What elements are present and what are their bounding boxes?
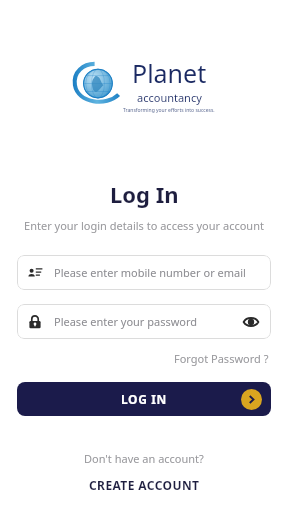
staticText: Transforming your efforts into success.: [123, 107, 215, 114]
button[interactable]: Forgot Password ?: [172, 349, 271, 368]
other: Submit: [241, 389, 262, 410]
staticText: Enter your login details to access your …: [24, 218, 264, 233]
button[interactable]: Please enter your password: [17, 304, 271, 339]
staticText: Please enter your password: [54, 314, 240, 329]
staticText: Planet: [132, 56, 207, 90]
button[interactable]: LOG IN: [17, 382, 271, 416]
staticText: Log In: [110, 179, 179, 209]
staticText: Forgot Password ?: [174, 351, 269, 366]
staticText: accountancy: [137, 90, 202, 105]
button[interactable]: Show password: [240, 311, 262, 333]
staticText: Please enter mobile number or email: [54, 265, 246, 280]
button[interactable]: CREATE ACCOUNT: [85, 475, 204, 495]
staticText: Don't have an account?: [84, 451, 204, 466]
staticText: LOG IN: [121, 391, 167, 407]
button[interactable]: Please enter mobile number or email: [17, 255, 271, 290]
staticText: CREATE ACCOUNT: [89, 477, 200, 493]
